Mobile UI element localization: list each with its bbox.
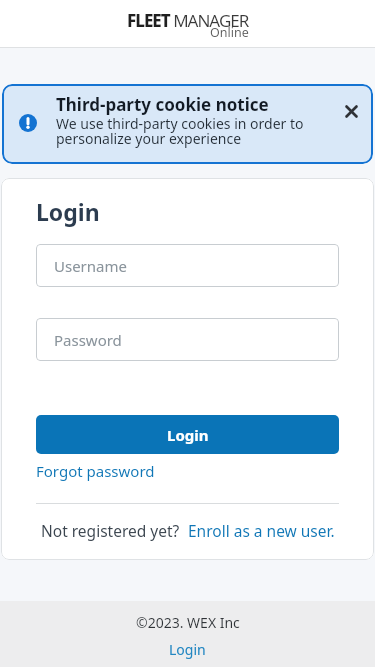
staticText: Online (210, 24, 249, 39)
button[interactable]: Forgot password (36, 461, 155, 481)
staticText: FLEET MANAGER (127, 9, 249, 32)
staticText: Username (54, 256, 127, 276)
staticText: Password (54, 330, 122, 350)
button[interactable]: Login (169, 640, 206, 659)
staticText: We use third-party cookies in order to p… (56, 114, 304, 148)
staticText: Login (36, 196, 100, 227)
staticText: Login (169, 640, 206, 659)
button[interactable] (340, 100, 362, 122)
staticText: Enroll as a new user. (188, 520, 335, 541)
staticText: Login (167, 425, 209, 445)
button[interactable]: Password (36, 318, 339, 361)
staticText: Forgot password (36, 461, 155, 481)
button[interactable]: Login (36, 415, 339, 454)
staticText: Third-party cookie notice (56, 93, 269, 116)
button[interactable]: Enroll as a new user. (188, 520, 335, 541)
button[interactable]: Username (36, 244, 339, 287)
staticText: ©2023. WEX Inc (136, 613, 240, 632)
staticText: Not registered yet? (41, 520, 180, 541)
